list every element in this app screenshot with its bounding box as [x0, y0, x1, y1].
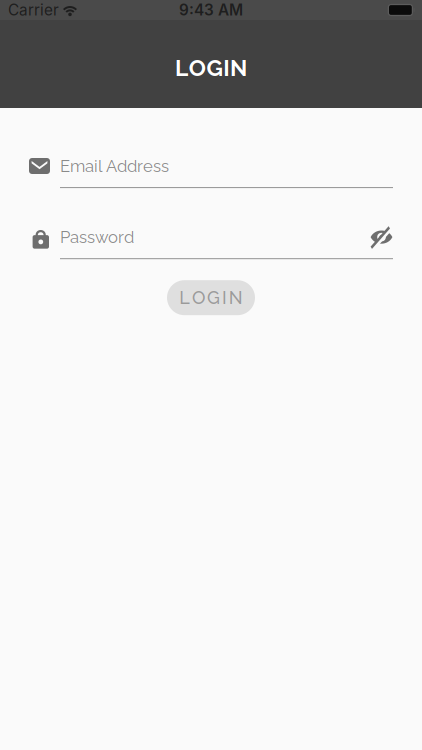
staticText: I: [223, 55, 229, 81]
staticText: Email Address: [60, 156, 169, 176]
button[interactable]: L: [167, 280, 255, 315]
staticText: O: [189, 55, 206, 81]
staticText: Carrier: [8, 1, 59, 19]
staticText: O: [192, 287, 205, 308]
staticText: G: [207, 287, 220, 308]
staticText: N: [229, 287, 243, 308]
staticText: I: [222, 287, 227, 308]
button[interactable]: Show password: [370, 228, 393, 246]
staticText: G: [206, 55, 222, 81]
staticText: N: [230, 55, 247, 81]
staticText: L: [179, 287, 190, 308]
staticText: Password: [60, 227, 134, 247]
staticText: L: [175, 55, 188, 81]
staticText: 9:43 AM: [179, 1, 243, 19]
